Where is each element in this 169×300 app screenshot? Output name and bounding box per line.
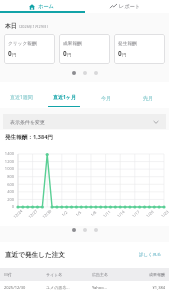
staticText: 2025/12/30 [4, 285, 46, 290]
staticText: 0 [63, 49, 67, 58]
staticText: 0 [118, 49, 122, 58]
staticText: サイト名 [46, 272, 92, 277]
button[interactable]: 今月 [85, 82, 127, 107]
other: Expand [153, 119, 159, 125]
button[interactable]: 詳しく見る [137, 250, 164, 260]
staticText: 0 [8, 49, 12, 58]
staticText: 成果報酬 [63, 40, 82, 46]
button[interactable]: 表示条件を変更 [3, 114, 166, 129]
staticText: 1/11 [102, 209, 112, 218]
button[interactable]: 2025/12/30 [0, 281, 169, 294]
button[interactable]: 直近1ヶ月 [43, 82, 85, 107]
button[interactable]: 発生報酬 [114, 34, 165, 64]
staticText: 円 [67, 52, 72, 58]
staticText: 円 [12, 52, 17, 58]
button[interactable]: 直近1週間 [0, 82, 43, 107]
staticText: 本日 [5, 22, 17, 29]
button[interactable]: ホーム [0, 0, 84, 13]
staticText: 詳しく見る [139, 252, 162, 258]
staticText: ¥1,384 [130, 285, 165, 290]
staticText: 1/2 [61, 210, 68, 217]
staticText: 800 [0, 174, 14, 179]
staticText: 0 [0, 204, 14, 209]
staticText: ユメの凪店... [46, 285, 92, 290]
staticText: 1400 [0, 151, 14, 156]
staticText: 円 [122, 52, 127, 58]
staticText: 1/5 [75, 210, 82, 217]
staticText: 広告主名 [92, 272, 130, 277]
staticText: 1/14 [116, 209, 126, 218]
staticText: 表示条件を変更 [10, 119, 46, 125]
staticText: 12/24 [12, 208, 24, 219]
staticText: 1/20 [145, 209, 155, 218]
staticText: 12/27 [27, 208, 39, 219]
staticText: (2026年1月29日) [19, 24, 48, 29]
staticText: 発生報酬 [118, 40, 137, 46]
staticText: 1/23 [160, 209, 169, 218]
staticText: 直近1ヶ月 [53, 94, 76, 101]
staticText: 200 [0, 197, 14, 202]
button[interactable]: 先月 [127, 82, 169, 107]
staticText: Yahoo... [92, 285, 130, 290]
staticText: 1000 [0, 166, 14, 171]
staticText: 直近で発生した注文 [5, 251, 65, 259]
staticText: 1/17 [131, 209, 141, 218]
staticText: 600 [0, 182, 14, 187]
staticText: レポート [119, 3, 141, 10]
staticText: 先月 [143, 95, 153, 101]
staticText: 1/8 [90, 210, 97, 217]
button[interactable]: クリック報酬 [4, 34, 55, 64]
staticText: 1200 [0, 159, 14, 164]
staticText: ホーム [38, 3, 54, 10]
staticText: 成果報酬 [130, 272, 165, 277]
staticText: 発生報酬：1,384円 [5, 133, 53, 141]
button[interactable]: 成果報酬 [59, 34, 110, 64]
button[interactable]: レポート [84, 0, 169, 13]
staticText: 直近1週間 [10, 94, 33, 101]
staticText: 400 [0, 189, 14, 194]
staticText: 日付 [4, 272, 46, 277]
staticText: 12/30 [41, 208, 53, 219]
staticText: クリック報酬 [8, 40, 37, 46]
staticText: 今月 [101, 95, 111, 101]
